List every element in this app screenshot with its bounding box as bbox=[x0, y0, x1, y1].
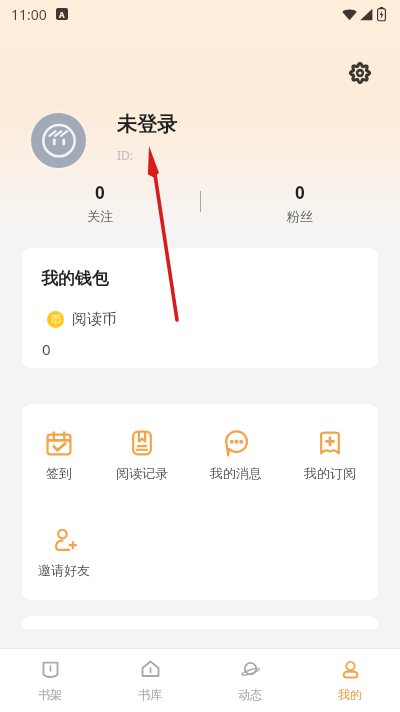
staticText: ID: bbox=[117, 147, 134, 163]
button[interactable]: 动态 bbox=[210, 660, 290, 702]
staticText: 签到 bbox=[46, 465, 72, 481]
staticText: 0 bbox=[42, 339, 51, 359]
button[interactable]: 阅读记录 bbox=[97, 430, 187, 481]
staticText: 我的 bbox=[338, 687, 362, 702]
staticText: 阅读币 bbox=[72, 310, 117, 329]
staticText: 0 bbox=[95, 181, 105, 204]
button[interactable]: Avatar bbox=[31, 113, 86, 168]
staticText: 阅读记录 bbox=[116, 465, 168, 481]
staticText: 未登录 bbox=[117, 112, 177, 137]
button[interactable]: 0 bbox=[200, 181, 400, 224]
button[interactable]: 0 bbox=[0, 181, 200, 224]
button[interactable]: 我的 bbox=[310, 660, 390, 702]
button[interactable]: 签到 bbox=[22, 430, 104, 481]
staticText: 动态 bbox=[238, 687, 262, 702]
staticText: A bbox=[59, 9, 65, 20]
staticText: 我的钱包 bbox=[41, 268, 109, 289]
staticText: 书架 bbox=[38, 687, 62, 702]
staticText: 0 bbox=[295, 181, 305, 204]
staticText: 11:00 bbox=[11, 5, 47, 24]
button[interactable]: 邀请好友 bbox=[22, 527, 109, 578]
button[interactable]: 我的消息 bbox=[191, 430, 281, 481]
button[interactable]: Settings bbox=[348, 61, 372, 85]
button[interactable]: 我的钱包 bbox=[22, 248, 378, 368]
staticText: 邀请好友 bbox=[38, 562, 90, 578]
staticText: 币 bbox=[51, 313, 61, 326]
staticText: 我的订阅 bbox=[304, 465, 356, 481]
staticText: 我的消息 bbox=[210, 465, 262, 481]
button[interactable]: 书架 bbox=[10, 660, 90, 702]
staticText: 关注 bbox=[87, 208, 113, 224]
staticText: 书库 bbox=[138, 687, 162, 702]
button[interactable]: 书库 bbox=[110, 660, 190, 702]
button[interactable]: 我的订阅 bbox=[285, 430, 375, 481]
staticText: 粉丝 bbox=[287, 208, 313, 224]
